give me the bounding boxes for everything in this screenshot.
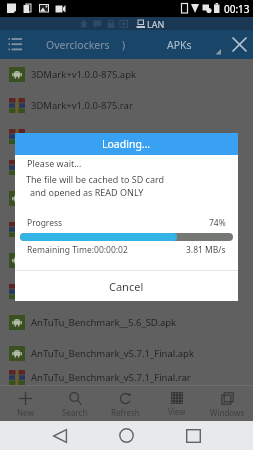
staticText: Please wait… (27, 157, 82, 169)
staticText: and opened as READ ONLY (30, 186, 144, 197)
button[interactable]: Search (50, 386, 100, 421)
staticText: Remaining Time:00:00:02 (27, 244, 128, 256)
staticText: Loading… (102, 137, 151, 151)
button[interactable]: Menu (0, 30, 31, 59)
button[interactable]: Windows (202, 386, 253, 421)
staticText: 74% (209, 217, 226, 229)
button[interactable]: AIDA64_v1.30.apk (0, 183, 253, 214)
button[interactable]: Overclockers (36, 30, 120, 59)
button[interactable]: 1504SP_Flash_Tool.exe_Windows_v5.1504 (0, 121, 253, 152)
button[interactable]: 1504SP_Flash_Tool.exe_Windows_v5.1504.ra… (0, 152, 253, 183)
staticText: LAN (147, 18, 165, 30)
staticText: AnTuTu_Benchmark__5.6_SD.apk (31, 316, 177, 329)
staticText: The file will be cached to SD card (26, 173, 164, 185)
button[interactable]: Recents (173, 421, 214, 450)
staticText: ) (122, 38, 126, 52)
staticText: AnTuTu_Benchmark_v5.7.1_Final.rar (31, 371, 191, 384)
button[interactable]: Cancel (15, 271, 238, 301)
staticText: Antutu_3DBench_v5.0.apk (31, 254, 148, 267)
staticText: View (168, 406, 186, 417)
button[interactable]: Antutu_3DBench_v5.0.apk (0, 245, 253, 276)
button[interactable]: AnTuTu_Benchmark_v5.7.1_Final.apk (0, 338, 253, 369)
staticText: Refresh (111, 407, 140, 418)
staticText: 3DMark+v1.0.0-875.rar (31, 99, 133, 112)
staticText: New (17, 407, 34, 418)
button[interactable]: Refresh (100, 386, 151, 421)
button[interactable]: View (151, 386, 202, 421)
staticText: 00:13 (224, 2, 250, 16)
staticText: 3.81 MB/s (186, 244, 226, 256)
staticText: Progress (27, 217, 63, 229)
button[interactable]: Back (39, 421, 80, 450)
staticText: 1504SP_Flash_Tool.exe_Windows_v5.1504.ra… (31, 161, 231, 174)
button[interactable]: 3DMark+v1.0.0-875.rar (0, 90, 253, 121)
staticText: Antutu_3DBench_v5.0.rar (31, 285, 144, 298)
staticText: 3DMark+v1.0.0-875.apk (31, 68, 137, 81)
staticText: Overclockers (46, 38, 110, 52)
button[interactable]: Close (225, 30, 253, 59)
staticText: AnTuTu_Benchmark_v5.7.1_Final.apk (31, 347, 195, 360)
staticText: Search (62, 407, 88, 418)
button[interactable]: New (0, 386, 50, 421)
staticText: AIDA64_v1.30.rar (31, 223, 108, 236)
button[interactable]: 3DMark+v1.0.0-875.apk (0, 59, 253, 90)
button[interactable]: AnTuTu_Benchmark_v5.7.1_Final.rar (0, 369, 253, 385)
button[interactable]: AnTuTu_Benchmark__5.6_SD.apk (0, 307, 253, 338)
button[interactable]: Antutu_3DBench_v5.0.rar (0, 276, 253, 307)
staticText: APKs (167, 38, 192, 52)
staticText: AIDA64_v1.30.apk (31, 192, 111, 205)
button[interactable]: AIDA64_v1.30.rar (0, 214, 253, 245)
button[interactable]: Home (106, 421, 147, 450)
staticText: 1504SP_Flash_Tool.exe_Windows_v5.1504 (31, 130, 216, 143)
staticText: Windows (210, 407, 245, 418)
staticText: Cancel (109, 279, 144, 294)
button[interactable]: APKs (150, 30, 208, 59)
